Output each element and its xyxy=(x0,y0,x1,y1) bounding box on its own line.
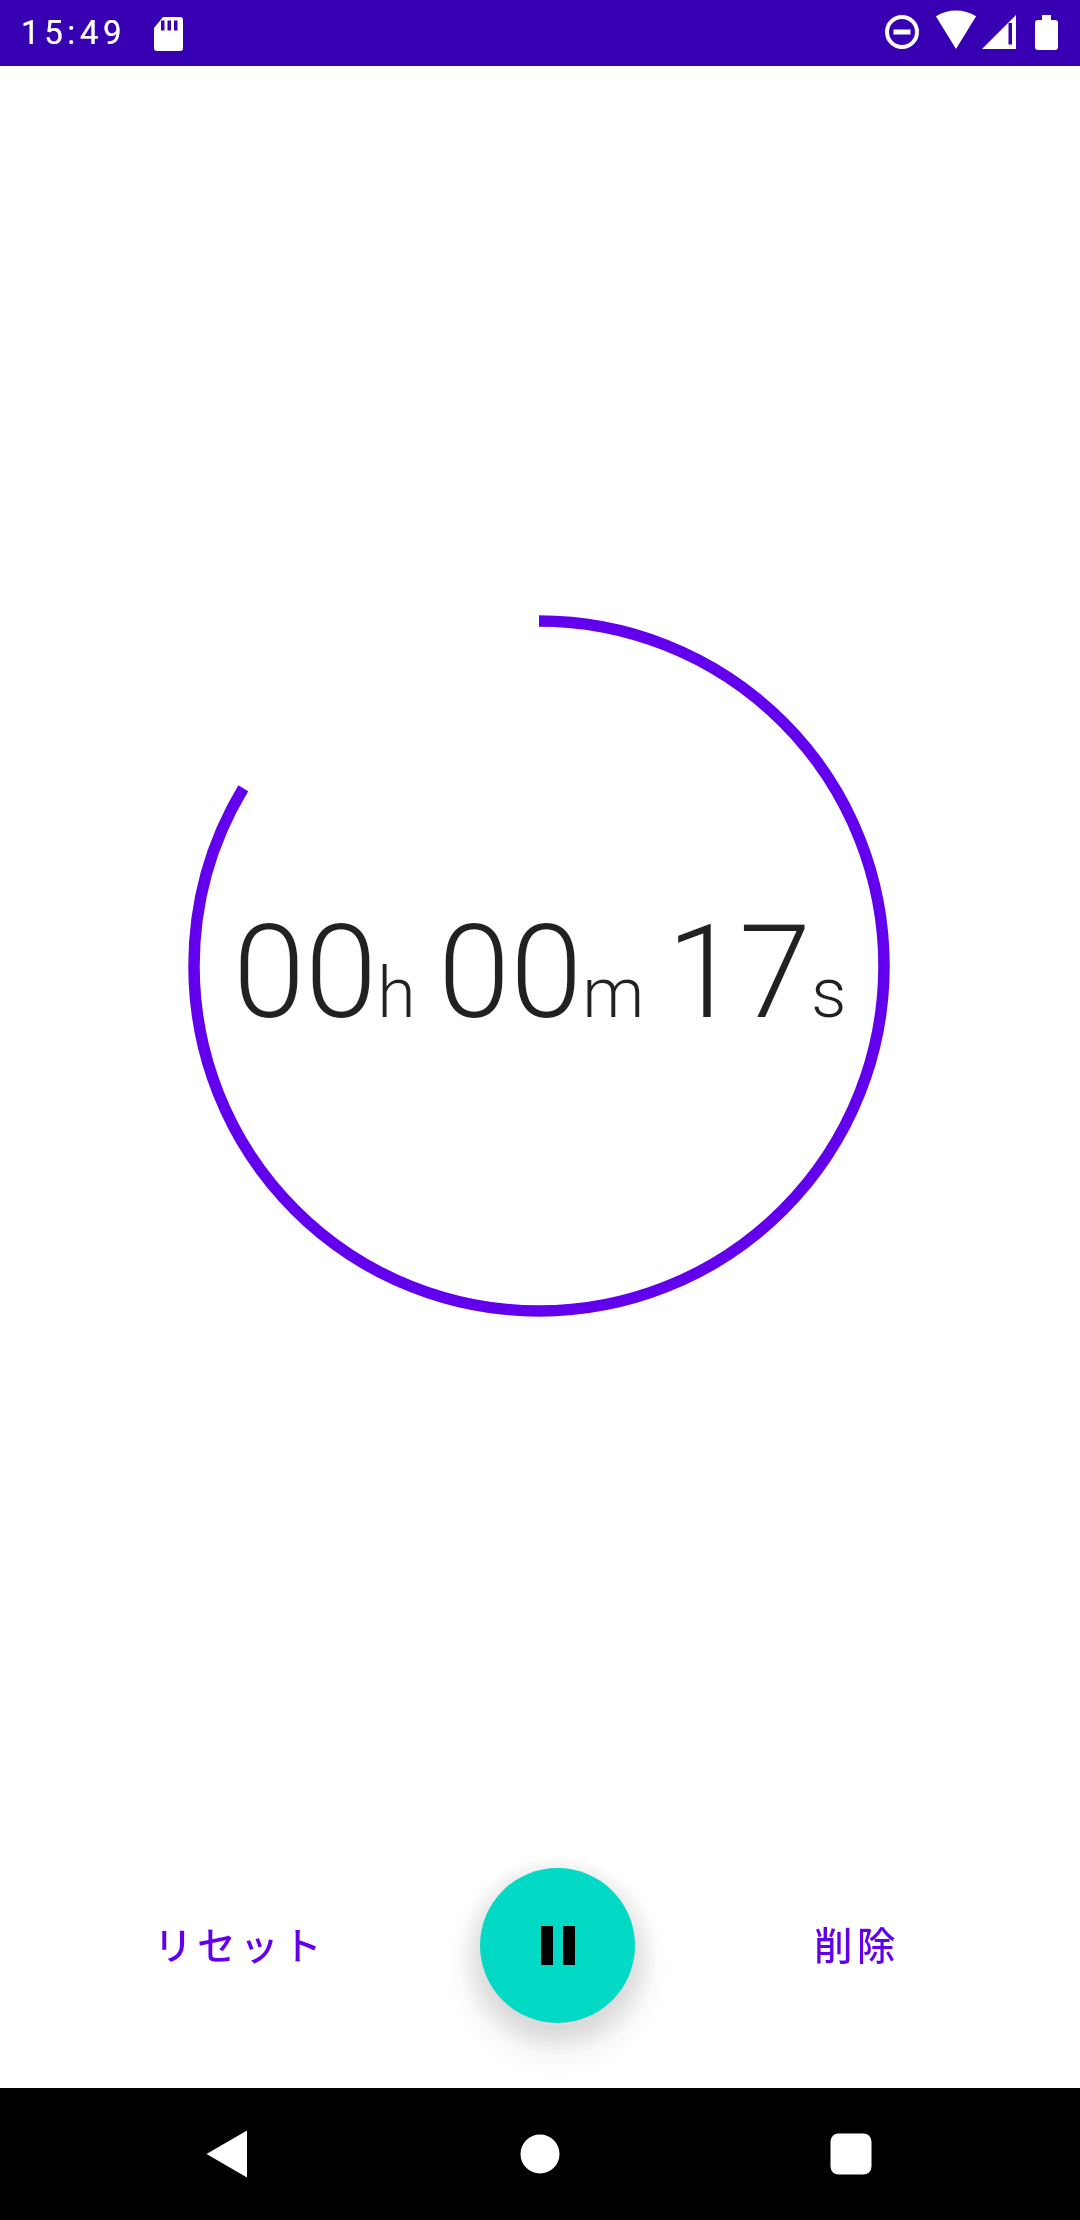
staticText: 00h 00m 17s xyxy=(233,896,847,1048)
staticText: リセット xyxy=(154,1915,327,1971)
button[interactable] xyxy=(172,2088,282,2220)
button[interactable] xyxy=(480,1868,635,2023)
button[interactable] xyxy=(796,2088,906,2220)
staticText: 削除 xyxy=(814,1915,901,1971)
button[interactable]: 削除 xyxy=(787,1903,927,1983)
button[interactable]: リセット xyxy=(150,1903,330,1983)
button[interactable] xyxy=(485,2088,595,2220)
staticText: 15:49 xyxy=(21,13,127,52)
